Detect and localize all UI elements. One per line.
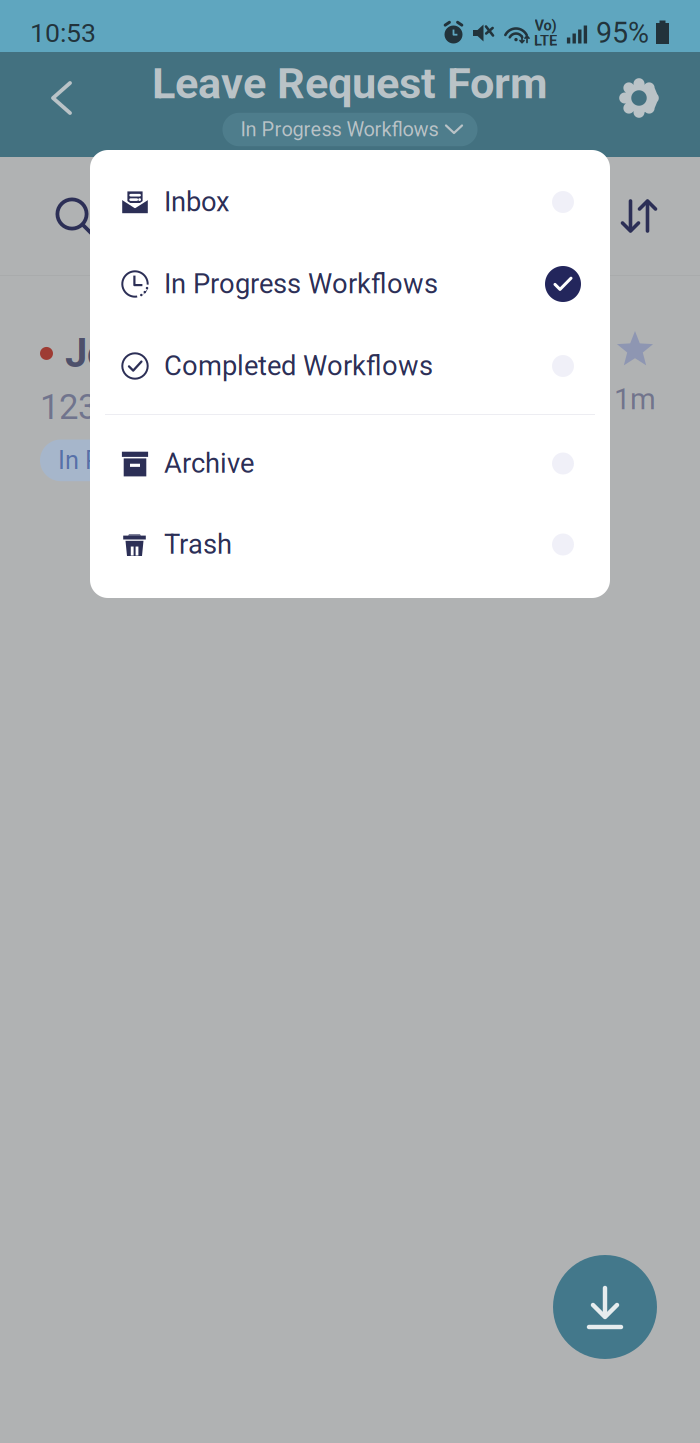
staticText: Inbox [164,186,230,218]
staticText: 1234 [40,387,116,427]
button[interactable]: Archive [90,423,610,504]
button[interactable]: Completed Workflows [90,325,610,407]
staticText: 1m [614,382,656,416]
button[interactable]: In Progress Workflows [222,113,477,146]
button[interactable]: Download [553,1255,657,1359]
staticText: Archive [164,447,254,479]
button[interactable]: Inbox [90,161,610,243]
staticText: In Pr [58,445,110,475]
staticText: Leave Request Form [152,58,548,109]
button[interactable]: In Progress Workflows [90,243,610,325]
staticText: In Progress Workflows [240,118,438,141]
staticText: 10:53 [30,17,96,49]
staticText: John [65,330,154,377]
staticText: Vo) [534,17,556,34]
staticText: 95% [596,16,649,50]
button[interactable]: Trash [90,504,610,585]
button[interactable]: Back [0,52,90,157]
staticText: In Progress Workflows [164,268,438,300]
button[interactable]: Settings [597,52,700,157]
staticText: Completed Workflows [164,350,433,382]
staticText: LTE [534,32,557,49]
staticText: Trash [164,528,232,560]
